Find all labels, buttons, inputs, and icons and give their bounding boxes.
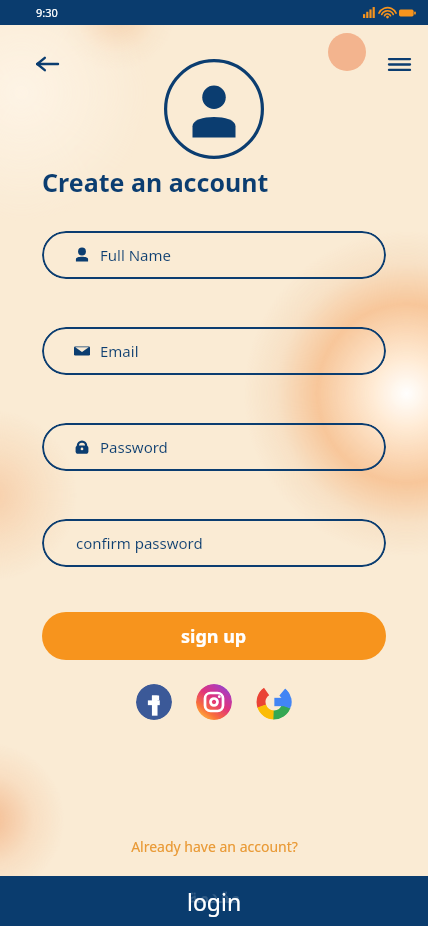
- button[interactable]: مقدمة: [0, 876, 428, 926]
- button[interactable]: sign up: [42, 612, 386, 660]
- button[interactable]: Profile picture: [164, 59, 264, 159]
- button[interactable]: Menu: [382, 47, 416, 81]
- staticText: Password: [100, 437, 168, 457]
- button[interactable]: Email: [42, 327, 386, 375]
- staticText: Create an account: [42, 165, 269, 199]
- staticText: 9:30: [36, 5, 58, 20]
- staticText: Already have an account?: [131, 837, 298, 856]
- button[interactable]: Sign in with Instagram: [196, 684, 232, 720]
- button[interactable]: Already have an account?: [0, 837, 428, 856]
- staticText: login: [187, 886, 242, 917]
- button[interactable]: Sign in with Facebook: [136, 684, 172, 720]
- button[interactable]: Sign in with Google: [256, 684, 292, 720]
- button[interactable]: Back: [30, 47, 64, 81]
- staticText: Full Name: [100, 245, 171, 265]
- staticText: مقدمة: [188, 884, 241, 907]
- staticText: confirm password: [76, 533, 203, 553]
- staticText: Email: [100, 341, 139, 361]
- button[interactable]: confirm password: [42, 519, 386, 567]
- button[interactable]: Full Name: [42, 231, 386, 279]
- staticText: sign up: [181, 624, 247, 649]
- button[interactable]: Password: [42, 423, 386, 471]
